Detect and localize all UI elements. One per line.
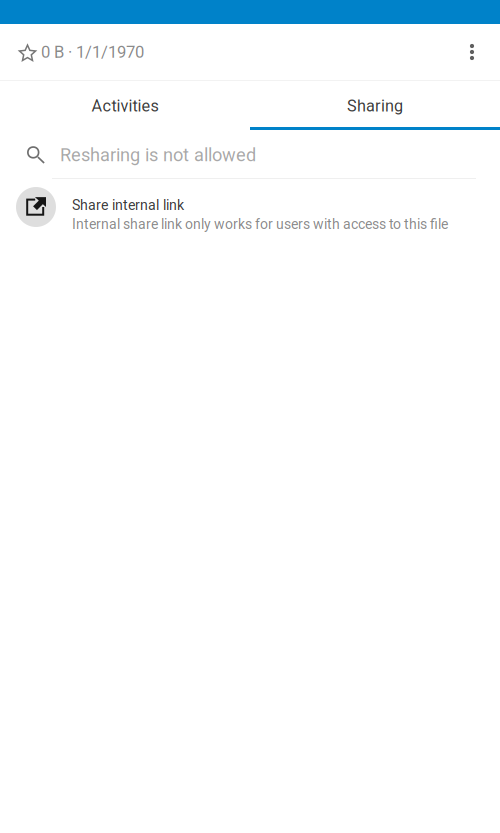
staticText: Resharing is not allowed bbox=[60, 144, 256, 166]
staticText: Share internal link bbox=[72, 197, 184, 214]
staticText: 0 B · 1/1/1970 bbox=[41, 42, 144, 62]
button[interactable]: Sharing bbox=[250, 81, 500, 127]
staticText: Internal share link only works for users… bbox=[72, 216, 448, 232]
button[interactable]: Activities bbox=[0, 81, 250, 127]
staticText: Activities bbox=[91, 96, 158, 116]
staticText: Sharing bbox=[347, 96, 403, 116]
button[interactable]: Share internal link bbox=[0, 179, 500, 244]
button[interactable]: More options bbox=[448, 28, 496, 76]
